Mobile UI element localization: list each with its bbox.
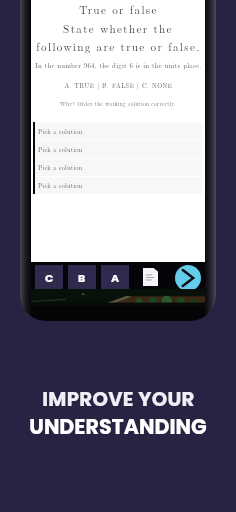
button[interactable]: B [68,265,96,289]
staticText: Pick a solution [38,127,83,136]
staticText: following are true or false. [36,38,201,54]
staticText: Why? Order the working solution correctl… [60,100,176,108]
staticText: UNDERSTANDING [29,412,207,441]
staticText: In the number 964, the digit 6 is in the… [35,60,202,70]
button[interactable]: Worksheet [142,267,158,287]
staticText: State whether the [63,20,173,36]
button[interactable]: A [101,265,129,289]
staticText: Pick a solution [38,163,83,172]
button[interactable]: Next [175,265,201,291]
staticText: A. TRUE | B. FALSE | C. NONE [64,81,173,90]
staticText: True or false [79,1,158,17]
button[interactable]: Pick a solution [33,158,202,176]
staticText: IMPROVE YOUR [42,385,195,413]
button[interactable]: Pick a solution [33,140,202,158]
button[interactable]: Pick a solution [33,176,202,194]
button[interactable]: Pick a solution [33,122,202,140]
staticText: Pick a solution [38,145,83,154]
staticText: A [111,270,120,285]
staticText: Pick a solution [38,181,83,190]
staticText: C [45,270,54,285]
button[interactable]: C [35,265,63,289]
staticText: B [78,270,86,285]
